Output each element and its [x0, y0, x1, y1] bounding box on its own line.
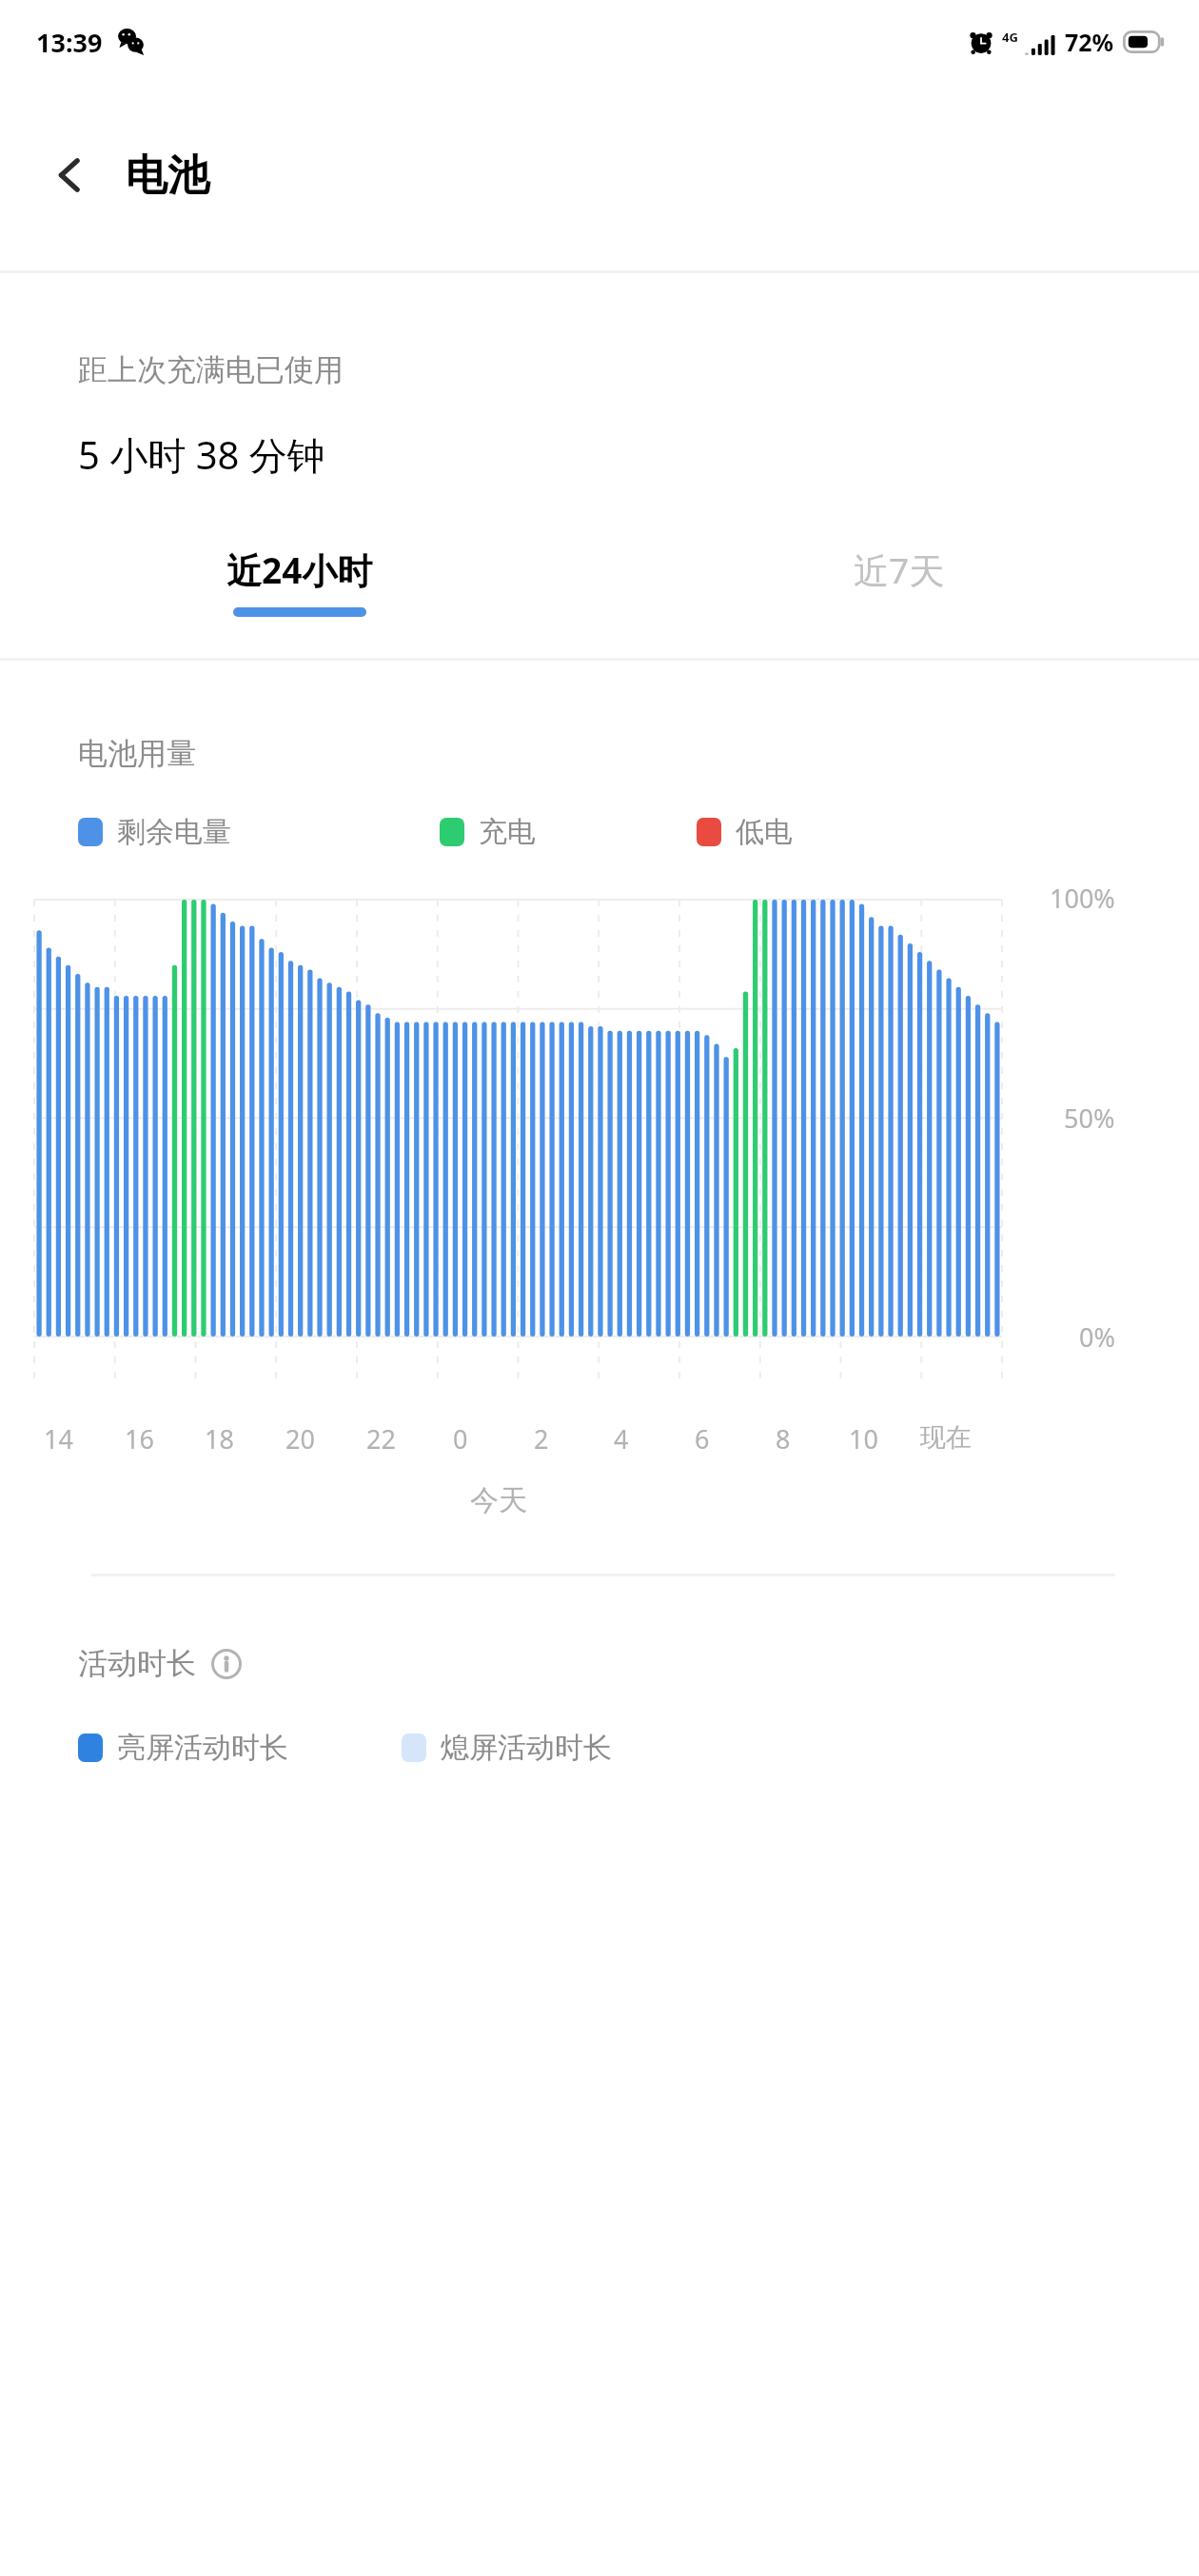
staticText: 4 [614, 1421, 629, 1456]
staticText: 2 [534, 1421, 549, 1456]
staticText: 距上次充满电已使用 [78, 351, 344, 388]
staticText: 现在 [920, 1421, 972, 1454]
staticText: 0% [1079, 1319, 1115, 1355]
staticText: 14 [44, 1421, 73, 1456]
staticText: 活动时长 [78, 1645, 196, 1682]
staticText: 低电 [736, 814, 793, 850]
staticText: 电池用量 [78, 735, 196, 772]
staticText: 18 [205, 1421, 234, 1456]
staticText: 电池 [126, 149, 209, 202]
staticText: 13:39 [36, 25, 103, 60]
staticText: 近7天 [854, 545, 945, 594]
staticText: 50% [1064, 1100, 1115, 1136]
staticText: 8 [776, 1421, 791, 1456]
staticText: 今天 [470, 1482, 527, 1518]
button[interactable]: 近24小时 [0, 538, 599, 617]
staticText: 近24小时 [226, 545, 373, 594]
staticText: 亮屏活动时长 [117, 1730, 288, 1766]
staticText: 6 [695, 1421, 710, 1456]
staticText: 5 小时 38 分钟 [78, 428, 325, 481]
staticText: 剩余电量 [117, 814, 231, 850]
staticText: 4G [1002, 29, 1018, 46]
staticText: 充电 [479, 814, 536, 850]
staticText: 72% [1065, 26, 1114, 58]
button[interactable]: Info [209, 1647, 244, 1681]
staticText: 20 [285, 1421, 315, 1456]
staticText: 熄屏活动时长 [441, 1730, 612, 1766]
staticText: 16 [125, 1421, 154, 1456]
staticText: 0 [453, 1421, 468, 1456]
button[interactable]: 近7天 [599, 538, 1199, 594]
staticText: 100% [1050, 881, 1115, 916]
staticText: 22 [366, 1421, 396, 1456]
staticText: 10 [849, 1421, 878, 1456]
button[interactable]: Back [32, 137, 108, 213]
